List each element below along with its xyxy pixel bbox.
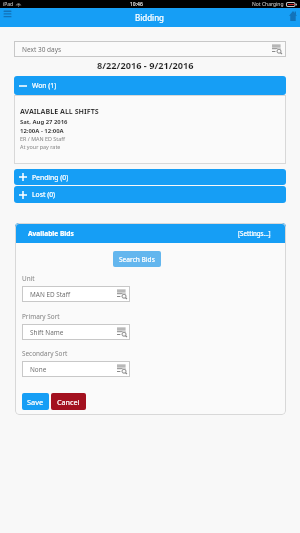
staticText: [Settings...]	[238, 229, 271, 237]
button[interactable]: Won (1)	[14, 76, 286, 95]
staticText: Primary Sort	[22, 312, 60, 321]
staticText: 10:46	[130, 1, 143, 8]
staticText: Secondary Sort	[22, 349, 68, 358]
staticText: Bidding	[135, 12, 165, 23]
staticText: Next 30 days	[22, 45, 62, 54]
staticText: Available Bids	[28, 229, 74, 238]
staticText: 12:00A - 12:00A	[20, 127, 64, 135]
button[interactable]: [Settings...]	[238, 229, 271, 237]
staticText: Won (1)	[32, 81, 57, 90]
staticText: iPad	[3, 1, 14, 8]
staticText: Cancel	[57, 397, 80, 407]
staticText: Save	[27, 397, 44, 407]
button[interactable]: Home	[289, 11, 297, 21]
staticText: 8/22/2016 - 9/21/2016	[97, 59, 194, 72]
button[interactable]: Cancel	[51, 393, 86, 410]
staticText: Unit	[22, 274, 35, 283]
button[interactable]: Search Bids	[113, 251, 161, 267]
button[interactable]: Pending (0)	[14, 169, 286, 185]
staticText: Search Bids	[119, 255, 155, 264]
button[interactable]: Save	[22, 393, 49, 410]
button[interactable]: None	[22, 361, 130, 377]
staticText: Not Charging	[252, 1, 284, 8]
button[interactable]: Shift Name	[22, 324, 130, 340]
staticText: Shift Name	[30, 328, 64, 337]
button[interactable]: Available Bids	[15, 223, 286, 243]
button[interactable]: Next 30 days	[14, 41, 286, 57]
button[interactable]: Lost (0)	[14, 186, 286, 203]
staticText: ER / MAN ED Staff	[20, 135, 65, 142]
staticText: Sat, Aug 27 2016	[20, 118, 68, 126]
button[interactable]: Menu	[2, 9, 13, 18]
staticText: Lost (0)	[32, 190, 56, 199]
staticText: At your pay rate	[20, 143, 61, 150]
staticText: None	[30, 365, 47, 374]
staticText: MAN ED Staff	[30, 290, 71, 299]
button[interactable]: MAN ED Staff	[22, 286, 130, 302]
staticText: Pending (0)	[32, 173, 69, 182]
staticText: AVAILABLE ALL SHIFTS	[20, 106, 99, 116]
